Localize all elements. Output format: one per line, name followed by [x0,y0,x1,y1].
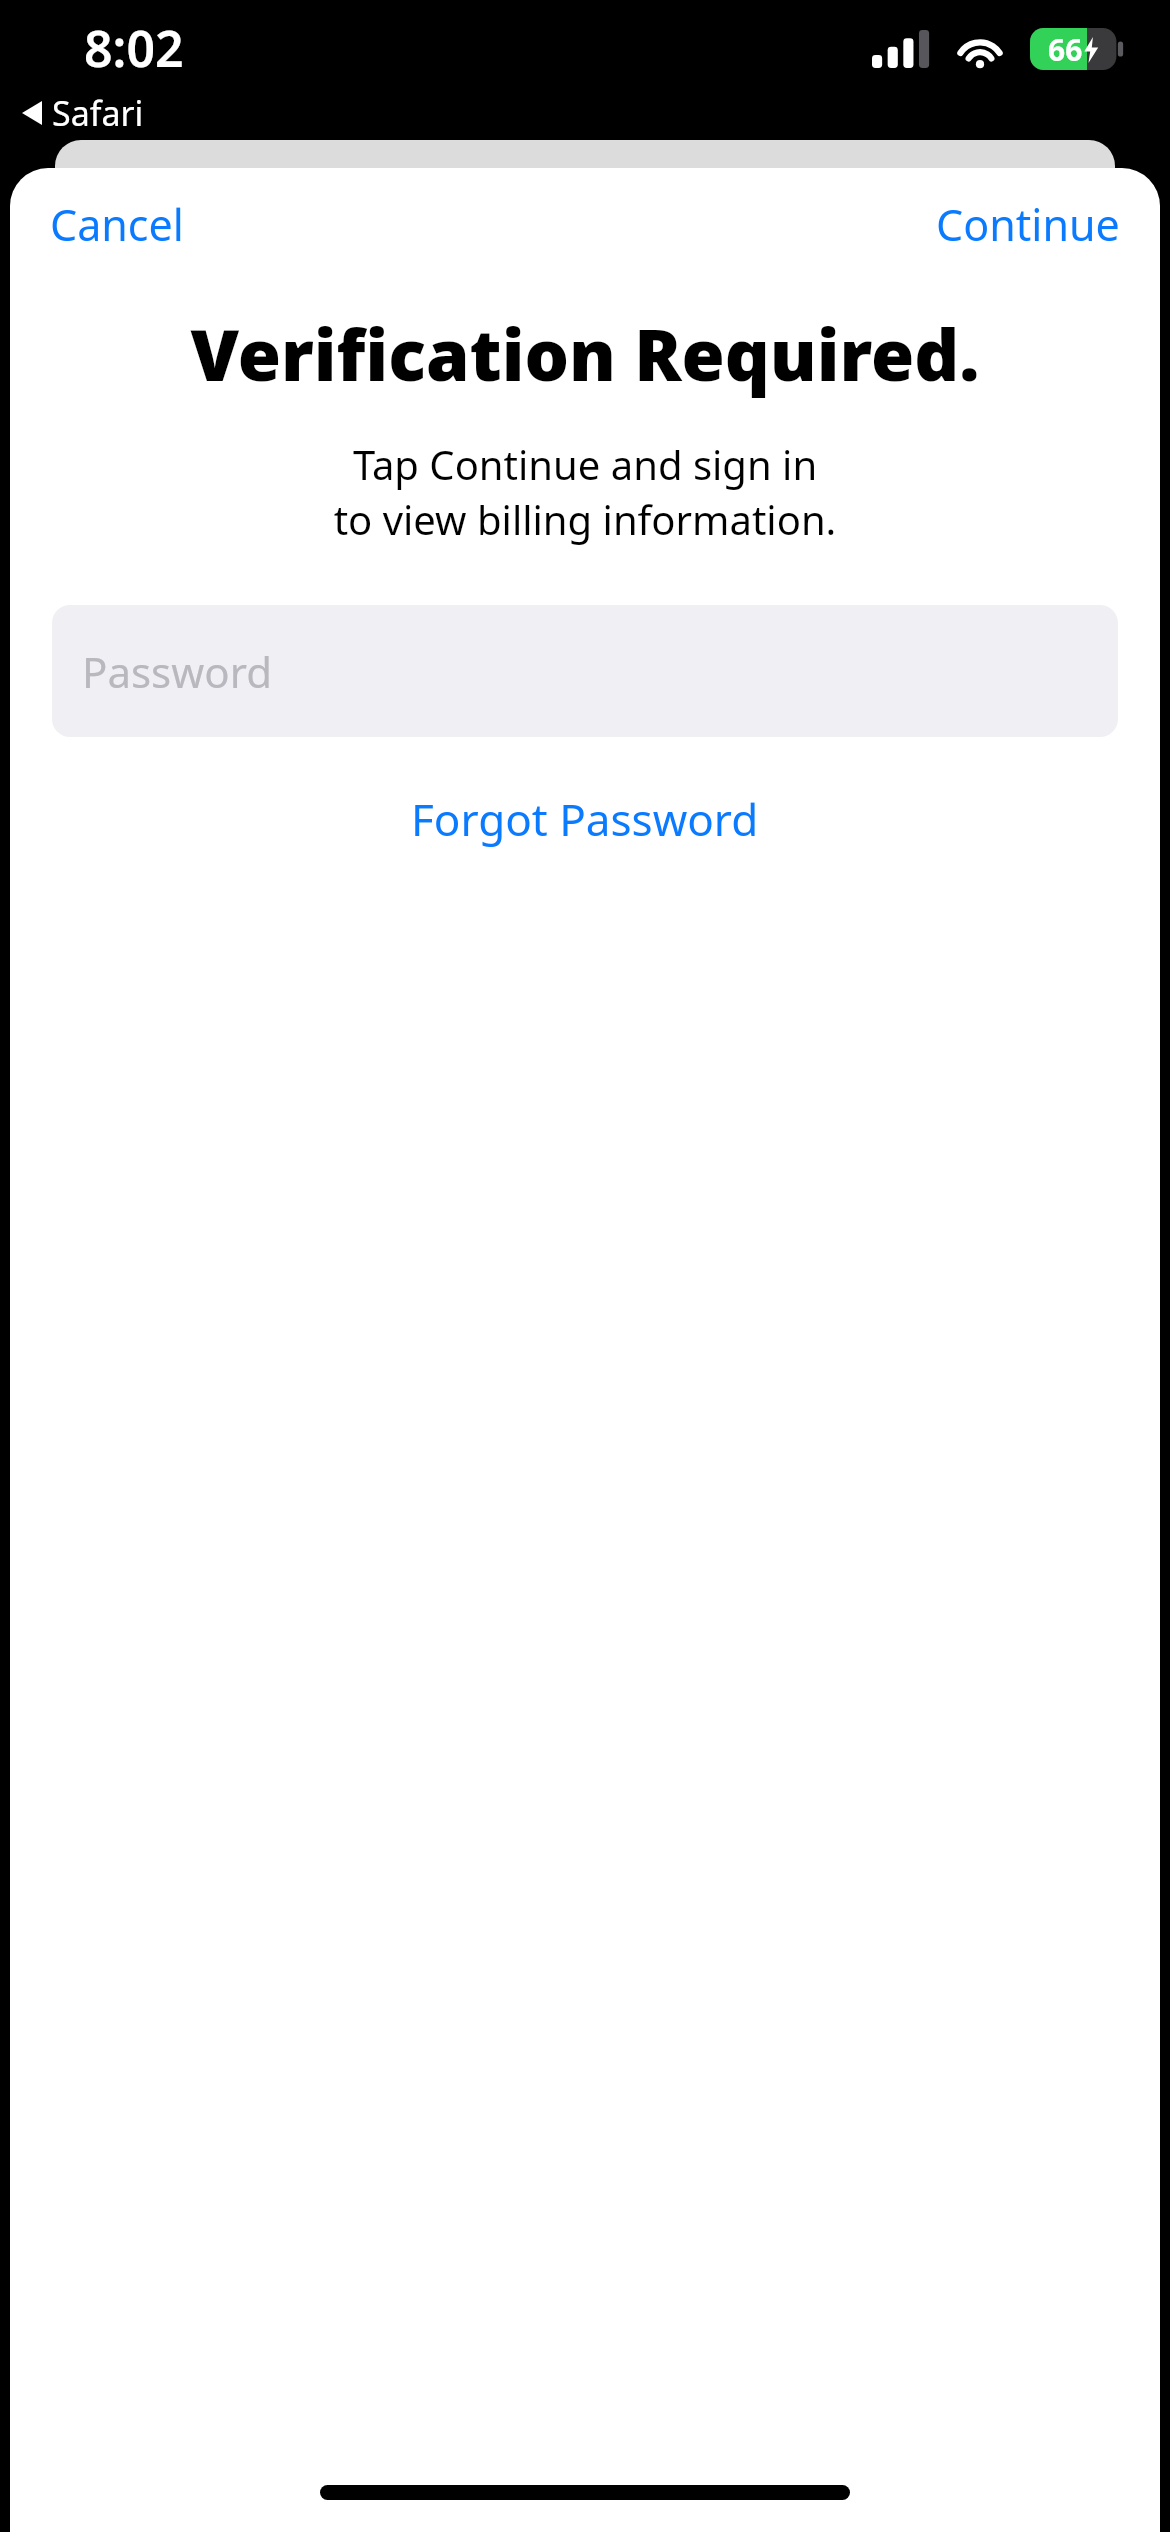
staticText: Continue [936,195,1120,254]
other: Back to Safari [22,101,42,125]
staticText: Safari [52,90,144,136]
staticText: 8:02 [84,14,184,82]
button[interactable]: Cancel [10,177,224,272]
button[interactable]: Password [52,605,1118,737]
button[interactable]: Forgot Password [371,773,799,865]
staticText: Tap Continue and sign in to view billing… [60,437,1110,547]
staticText: Forgot Password [411,789,759,849]
button[interactable]: Back to Safari [0,86,162,144]
staticText: Cancel [50,195,184,254]
staticText: Password [82,643,272,700]
other: Battery 66 percent charging [1030,28,1126,70]
button[interactable]: Continue [896,177,1160,272]
other: Cellular signal [872,30,930,68]
staticText: 66 [1048,29,1083,70]
other: Wi-Fi [954,30,1006,68]
staticText: Verification Required. [34,306,1136,401]
